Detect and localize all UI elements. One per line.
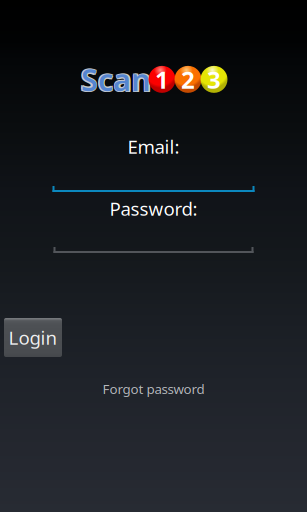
staticText: Login [8, 325, 57, 350]
button[interactable]: Password [53, 221, 253, 253]
staticText: Password: [109, 196, 197, 221]
staticText: 2 [181, 63, 195, 95]
staticText: 1 [155, 63, 169, 95]
staticText: Scan [80, 58, 151, 99]
button[interactable]: Login [4, 318, 62, 357]
staticText: Forgot password [102, 380, 204, 398]
staticText: Scan [81, 59, 151, 100]
staticText: Scan [81, 58, 152, 99]
button[interactable]: Forgot password [0, 380, 307, 398]
staticText: 3 [207, 63, 221, 95]
staticText: Scan [81, 60, 152, 100]
staticText: Scan [80, 60, 151, 100]
staticText: Email: [127, 134, 179, 159]
button[interactable]: Email [52, 160, 254, 192]
